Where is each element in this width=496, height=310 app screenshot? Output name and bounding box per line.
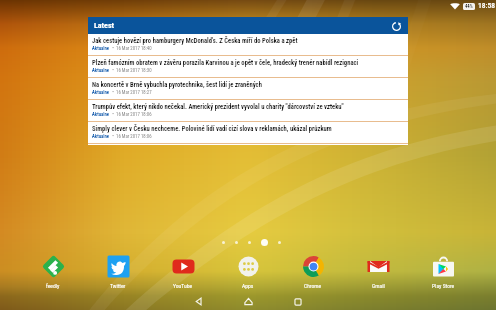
button[interactable]: YouTube [159,254,207,290]
staticText: YouTube [173,283,193,290]
staticText: Play Store [432,283,455,290]
staticText: 44% [465,4,473,9]
button[interactable]: Apps [224,254,272,290]
button[interactable]: Chrome [289,254,337,290]
button[interactable]: Gmail [354,254,402,290]
staticText: Aktualne [92,46,110,52]
button[interactable]: Home [231,293,265,310]
staticText: 18:58 [478,1,496,10]
staticText: Twitter [110,283,126,290]
staticText: • 16 Mar 2017 18:27 [110,90,152,96]
button[interactable]: feedly [29,254,77,290]
staticText: Aktualne [92,112,110,118]
staticText: Trumpův efekt, který nikdo nečekal. Amer… [92,103,344,111]
button[interactable]: Refresh [390,20,402,32]
staticText: Aktualne [92,68,110,74]
staticText: • 16 Mar 2017 18:30 [110,68,152,74]
staticText: • 16 Mar 2017 18:06 [110,112,152,118]
staticText: Chrome [304,283,322,290]
button[interactable]: Plzeň famózním obratem v závěru porazila… [88,56,408,78]
button[interactable]: Jak cestuje hovězí pro hamburgery McDona… [88,34,408,56]
staticText: Apps [242,283,254,290]
staticText: Simply clever v Česku nechceme. Poloviné… [92,125,332,133]
button[interactable]: Recents [281,293,315,310]
button[interactable]: Twitter [94,254,142,290]
staticText: Na koncertě v Brně vybuchla pyrotechnika… [92,81,262,89]
button[interactable]: Play Store [419,254,467,290]
staticText: Aktualne [92,90,110,96]
staticText: Jak cestuje hovězí pro hamburgery McDona… [92,37,298,45]
staticText: • 16 Mar 2017 18:06 [110,134,152,140]
button[interactable]: Na koncertě v Brně vybuchla pyrotechnika… [88,78,408,100]
staticText: feedly [46,283,60,290]
staticText: • 16 Mar 2017 18:40 [110,46,152,52]
button[interactable]: Latest [88,17,408,34]
button[interactable]: Back [181,293,215,310]
button[interactable]: Simply clever v Česku nechceme. Poloviné… [88,122,408,144]
staticText: Plzeň famózním obratem v závěru porazila… [92,59,359,67]
staticText: Latest [94,21,114,30]
staticText: Gmail [372,283,385,290]
button[interactable]: Trumpův efekt, který nikdo nečekal. Amer… [88,100,408,122]
staticText: Aktualne [92,134,110,140]
